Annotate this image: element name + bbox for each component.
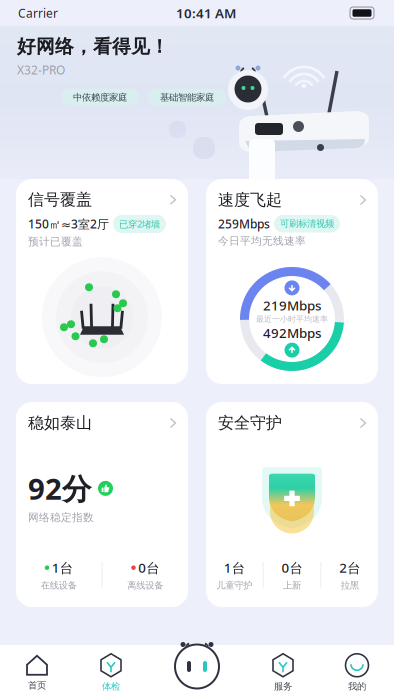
staticText: 安全守护 bbox=[218, 413, 282, 433]
button[interactable]: 我的 bbox=[320, 649, 394, 695]
button[interactable]: 中依赖度家庭 bbox=[61, 89, 139, 106]
button[interactable]: 首页 bbox=[0, 649, 74, 695]
staticText: 首页 bbox=[28, 680, 46, 691]
button[interactable]: 安全守护 bbox=[206, 402, 378, 434]
button[interactable]: 稳如泰山 bbox=[16, 402, 188, 434]
staticText: 中依赖度家庭 bbox=[73, 92, 127, 103]
staticText: 上新 bbox=[283, 579, 301, 591]
staticText: X32-PRO bbox=[17, 62, 65, 78]
staticText: 0台 bbox=[281, 559, 302, 576]
staticText: 速度飞起 bbox=[218, 190, 282, 210]
staticText: 92分 bbox=[28, 469, 91, 508]
staticText: 我的 bbox=[348, 681, 366, 692]
staticText: 2台 bbox=[339, 559, 360, 576]
staticText: 10:41 AM bbox=[176, 4, 236, 22]
staticText: 已穿2堵墙 bbox=[119, 218, 160, 230]
button[interactable]: 服务 bbox=[246, 649, 320, 695]
button[interactable]: 助手 bbox=[165, 634, 229, 698]
button[interactable]: 2台 bbox=[339, 559, 360, 591]
staticText: 0台 bbox=[138, 559, 159, 576]
staticText: 最近一小时平均速率 bbox=[256, 314, 328, 324]
button[interactable]: 1台 bbox=[216, 559, 252, 591]
button[interactable]: 0台 bbox=[127, 559, 163, 591]
staticText: 稳如泰山 bbox=[28, 413, 92, 433]
staticText: 259Mbps bbox=[218, 216, 270, 232]
button[interactable]: 信号覆盖 bbox=[16, 179, 188, 211]
staticText: 可刷标清视频 bbox=[280, 218, 334, 229]
staticText: 219Mbps bbox=[263, 296, 321, 314]
button[interactable]: 基础智能家庭 bbox=[148, 89, 226, 106]
staticText: 离线设备 bbox=[127, 579, 163, 591]
staticText: 492Mbps bbox=[263, 324, 321, 342]
staticText: 1台 bbox=[224, 559, 245, 576]
staticText: 在线设备 bbox=[41, 579, 77, 591]
staticText: 好网络，看得见！ bbox=[17, 35, 169, 58]
staticText: 网络稳定指数 bbox=[28, 511, 94, 524]
staticText: 体检 bbox=[102, 681, 120, 692]
button[interactable]: 0台 bbox=[281, 559, 302, 591]
staticText: 今日平均无线速率 bbox=[218, 234, 306, 248]
staticText: 150㎡≈3室2厅 bbox=[28, 216, 109, 232]
staticText: 预计已覆盖 bbox=[28, 235, 83, 248]
staticText: Carrier bbox=[18, 5, 58, 21]
staticText: 拉黑 bbox=[341, 579, 359, 591]
button[interactable]: 体检 bbox=[74, 649, 148, 695]
staticText: 服务 bbox=[274, 681, 292, 692]
staticText: 1台 bbox=[52, 559, 73, 576]
staticText: 儿童守护 bbox=[216, 579, 252, 591]
button[interactable]: 1台 bbox=[41, 559, 77, 591]
staticText: 基础智能家庭 bbox=[160, 92, 214, 103]
button[interactable]: 速度飞起 bbox=[206, 179, 378, 211]
staticText: 信号覆盖 bbox=[28, 190, 92, 210]
